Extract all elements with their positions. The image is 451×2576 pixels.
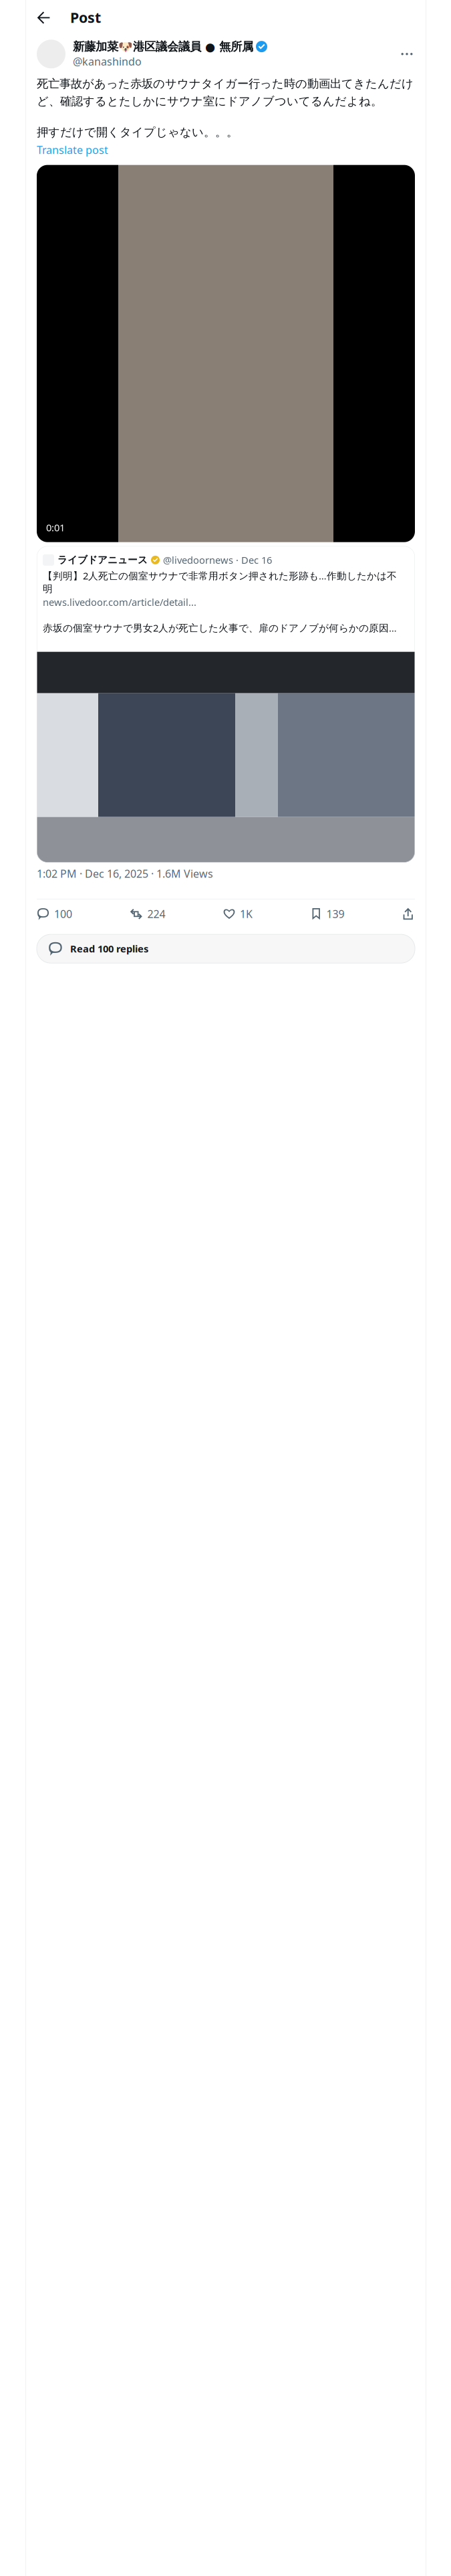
button[interactable]: 139 (310, 907, 344, 921)
staticText: ど、確認するとたしかにサウナ室にドアノブついてるんだよね。 (37, 94, 382, 108)
staticText: @kanashindo (73, 54, 142, 69)
staticText: 新藤加菜🐶港区議会議員 ● 無所属 (73, 39, 253, 54)
staticText: ライブドアニュース (57, 554, 148, 566)
staticText: 押すだけで開くタイプじゃない。。。 (37, 125, 238, 139)
staticText: 【判明】2人死亡の個室サウナで非常用ボタン押された形跡も…作動したかは不 (43, 569, 397, 582)
button[interactable]: Translate post (37, 143, 108, 157)
staticText: 明 (43, 583, 53, 595)
button[interactable]: Back (31, 5, 56, 30)
staticText: 死亡事故があった赤坂のサウナタイガー行った時の動画出てきたんだけ (37, 77, 414, 91)
button[interactable]: Read 100 replies (37, 934, 415, 963)
staticText: Read 100 replies (70, 942, 148, 955)
button[interactable]: 224 (130, 907, 165, 921)
button[interactable]: 1K (223, 907, 253, 921)
button[interactable]: Share (402, 907, 414, 920)
button[interactable]: ライブドアニュース (37, 546, 415, 862)
staticText: Translate post (37, 143, 108, 157)
staticText: 0:01 (46, 521, 65, 534)
staticText: news.livedoor.com/article/detail... (43, 596, 196, 609)
staticText: Post (70, 8, 101, 27)
button[interactable]: 100 (37, 907, 72, 921)
button[interactable]: More options (399, 46, 415, 62)
staticText: @livedoornews · Dec 16 (163, 554, 272, 567)
staticText: 224 (147, 907, 165, 921)
staticText: 赤坂の個室サウナで男女2人が死亡した火事で、扉のドアノブが何らかの原因… (43, 621, 397, 634)
staticText: 100 (54, 907, 72, 921)
staticText: 139 (326, 907, 344, 921)
staticText: 1K (240, 907, 253, 921)
staticText: 1:02 PM · Dec 16, 2025 · 1.6M Views (37, 866, 213, 881)
